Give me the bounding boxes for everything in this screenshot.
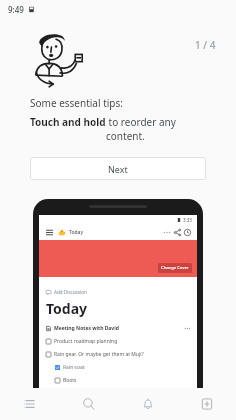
button[interactable]: Product roadmap planning bbox=[46, 338, 191, 345]
staticText: Boots bbox=[63, 377, 77, 384]
button[interactable]: History bbox=[182, 227, 192, 237]
button[interactable]: List bbox=[0, 388, 59, 420]
staticText: 3:33 bbox=[183, 217, 192, 223]
button[interactable]: Rain coat bbox=[55, 364, 191, 371]
staticText: Add Discussion bbox=[54, 289, 87, 295]
button[interactable]: Search bbox=[59, 388, 118, 420]
button[interactable]: Add bbox=[177, 388, 236, 420]
staticText: 1 / 4 bbox=[195, 38, 216, 52]
staticText: Today bbox=[69, 229, 84, 236]
button[interactable]: Rain gear. Or maybe get them at Muji? bbox=[46, 351, 191, 358]
staticText: Change Cover bbox=[161, 265, 189, 271]
staticText: Today bbox=[46, 299, 88, 318]
button[interactable]: Next bbox=[30, 157, 206, 180]
button[interactable]: Notifications bbox=[118, 388, 177, 420]
button[interactable]: More options bbox=[162, 227, 172, 237]
button[interactable]: Meeting Notes with David bbox=[46, 325, 191, 332]
staticText: Touch and hold bbox=[30, 115, 106, 129]
button[interactable]: Menu bbox=[44, 227, 55, 238]
staticText: 9:49 bbox=[8, 4, 24, 15]
staticText: Rain gear. Or maybe get them at Muji? bbox=[54, 351, 144, 358]
staticText: Rain coat bbox=[63, 364, 85, 371]
button[interactable]: Add Discussion bbox=[46, 289, 87, 295]
staticText: to reorder any content. bbox=[106, 115, 206, 143]
button[interactable]: Boots bbox=[55, 377, 191, 384]
staticText: Product roadmap planning bbox=[54, 338, 118, 345]
staticText: Meeting Notes with David bbox=[54, 325, 119, 332]
staticText: Next bbox=[108, 163, 128, 175]
button[interactable]: Change Cover bbox=[158, 263, 192, 273]
staticText: Some essential tips: bbox=[30, 96, 123, 110]
button[interactable]: Share bbox=[172, 227, 182, 237]
